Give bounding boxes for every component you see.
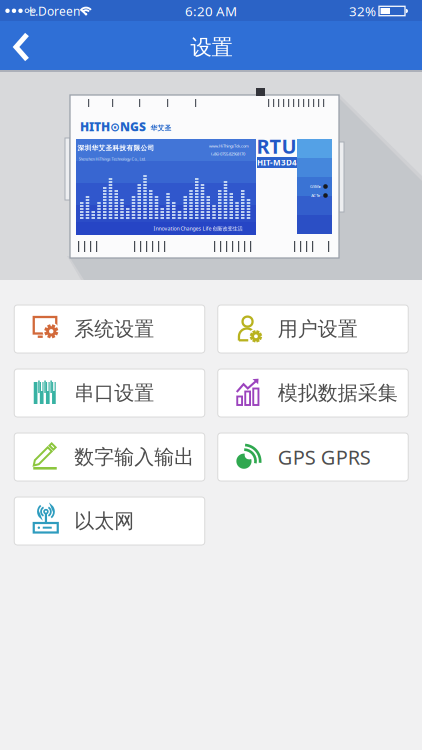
staticText: www.HiThingsTek.com: [209, 143, 249, 149]
staticText: 用户设置: [278, 317, 358, 341]
staticText: HITH⊙NGS: [80, 118, 146, 134]
button[interactable]: 用户设置: [218, 305, 408, 353]
staticText: RTU: [256, 133, 296, 159]
button[interactable]: 系统设置: [14, 305, 205, 353]
button[interactable]: [2, 25, 46, 67]
staticText: 以太网: [74, 509, 134, 533]
staticText: 华艾圣: [150, 124, 171, 132]
staticText: 32%: [349, 2, 376, 20]
staticText: ACT▸: [311, 193, 320, 198]
staticText: HIT-M3D4: [257, 157, 297, 168]
button[interactable]: 模拟数据采集: [218, 369, 408, 417]
staticText: 模拟数据采集: [278, 381, 398, 405]
staticText: 系统设置: [74, 317, 154, 341]
staticText: Innovation Changes Life 创新改变生活: [153, 225, 242, 232]
staticText: 深圳华艾圣科技有限公司: [77, 144, 154, 152]
staticText: Shenzhen HiThings Technology Co., Ltd.: [78, 156, 145, 162]
staticText: (+86) 0755-82968170: [211, 151, 245, 157]
button[interactable]: 以太网: [14, 497, 205, 545]
button[interactable]: GPS GPRS: [218, 433, 408, 481]
staticText: 6:20 AM: [185, 2, 237, 20]
button[interactable]: 串口设置: [14, 369, 205, 417]
staticText: 串口设置: [74, 381, 154, 405]
staticText: 数字输入输出: [74, 445, 194, 469]
staticText: GPS GPRS: [278, 444, 371, 470]
staticText: 设置: [190, 34, 232, 61]
button[interactable]: 数字输入输出: [14, 433, 205, 481]
staticText: L.Doreen: [29, 3, 80, 19]
staticText: GSM▸: [310, 184, 321, 189]
